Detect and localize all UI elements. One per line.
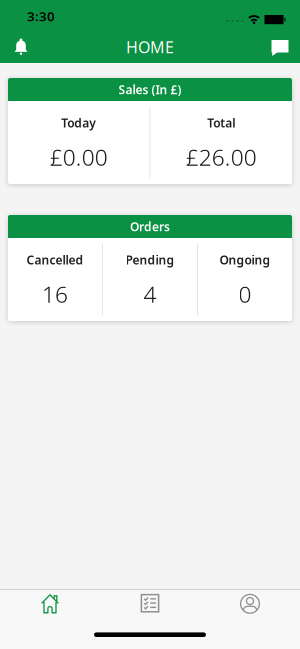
staticText: £0.00: [50, 142, 108, 172]
button[interactable]: Home: [0, 590, 100, 614]
button[interactable]: Messages: [263, 32, 296, 64]
button[interactable]: Notifications: [6, 30, 36, 63]
staticText: Cancelled: [26, 252, 83, 268]
staticText: HOME: [126, 36, 174, 58]
staticText: 4: [143, 279, 156, 309]
staticText: Ongoing: [219, 252, 270, 268]
button[interactable]: Orders: [100, 590, 200, 614]
staticText: Today: [61, 115, 96, 131]
staticText: Orders: [130, 218, 170, 234]
button[interactable]: Profile: [200, 590, 300, 614]
staticText: £26.00: [186, 142, 257, 172]
staticText: 3:30: [27, 7, 55, 25]
staticText: Sales (In £): [118, 81, 181, 97]
staticText: 0: [238, 279, 251, 309]
staticText: Total: [207, 115, 235, 131]
staticText: 16: [42, 279, 68, 309]
staticText: Pending: [125, 252, 174, 268]
